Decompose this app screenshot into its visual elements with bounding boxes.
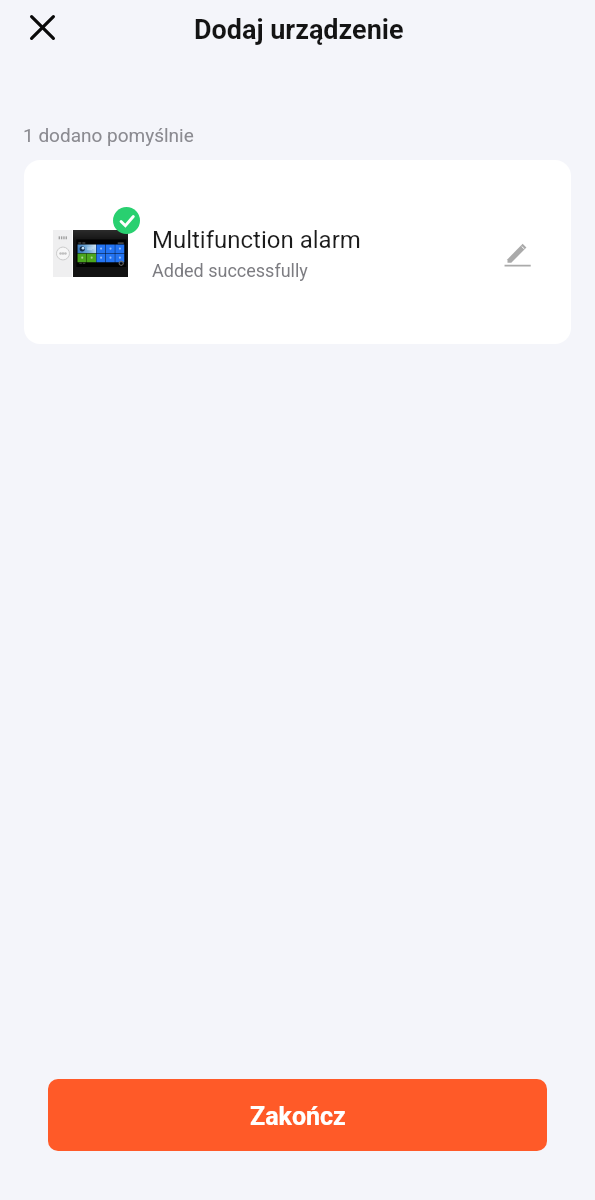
button[interactable]: Multifunction alarm [24,160,571,344]
staticText: 1 dodano pomyślnie [23,124,194,146]
staticText: Zakończ [250,1102,346,1131]
staticText: Added successfully [152,260,308,281]
button[interactable]: Zakończ [48,1079,547,1151]
staticText: Dodaj urządzenie [194,14,404,46]
staticText: Multifunction alarm [152,226,361,254]
button[interactable]: Edit device name [495,231,540,276]
button[interactable]: Close [18,3,67,52]
